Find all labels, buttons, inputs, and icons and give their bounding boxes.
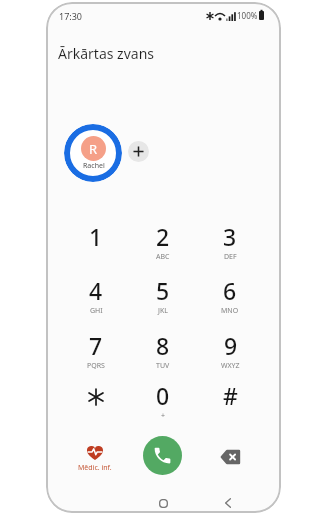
staticText: # <box>223 380 238 411</box>
staticText: + <box>161 411 166 421</box>
button[interactable]: # <box>197 373 263 427</box>
staticText: 0 <box>156 380 170 411</box>
staticText: Rachel <box>83 161 105 171</box>
staticText: Ārkārtas zvans <box>58 44 154 63</box>
button[interactable]: 2 <box>130 214 196 268</box>
button[interactable]: 1 <box>63 214 129 268</box>
staticText: 9 <box>224 330 238 361</box>
staticText: 4 <box>89 275 103 306</box>
staticText: DEF <box>224 252 237 262</box>
staticText: TUV <box>156 361 170 371</box>
staticText: Mēdic. inf. <box>78 463 112 473</box>
staticText: 8 <box>156 330 170 361</box>
staticText: JKL <box>158 306 168 316</box>
button[interactable] <box>148 493 178 513</box>
staticText: 3 <box>223 221 237 252</box>
button[interactable] <box>213 493 243 513</box>
button[interactable] <box>63 373 129 427</box>
button[interactable] <box>128 141 149 162</box>
staticText: GHI <box>90 306 103 316</box>
staticText: 2 <box>156 221 170 252</box>
staticText: ABC <box>156 252 170 262</box>
button[interactable]: 5 <box>130 268 196 322</box>
button[interactable]: 6 <box>197 268 263 322</box>
button[interactable]: 8 <box>130 323 196 377</box>
button[interactable]: 9 <box>197 323 263 377</box>
button[interactable] <box>143 436 182 475</box>
button[interactable]: Mēdic. inf. <box>65 442 125 476</box>
staticText: PQRS <box>87 361 105 371</box>
staticText: 100% <box>237 10 258 21</box>
staticText: 17:30 <box>59 10 83 22</box>
staticText: R <box>89 140 98 158</box>
staticText: 1 <box>89 221 103 252</box>
staticText: WXYZ <box>221 361 240 371</box>
staticText: 7 <box>89 330 103 361</box>
button[interactable]: R <box>64 124 122 182</box>
button[interactable]: 4 <box>63 268 129 322</box>
staticText: 6 <box>223 275 237 306</box>
button[interactable]: 0 <box>130 373 196 427</box>
button[interactable] <box>208 443 254 471</box>
button[interactable]: 7 <box>63 323 129 377</box>
button[interactable]: 3 <box>197 214 263 268</box>
staticText: MNO <box>221 306 239 316</box>
staticText: 5 <box>156 275 170 306</box>
